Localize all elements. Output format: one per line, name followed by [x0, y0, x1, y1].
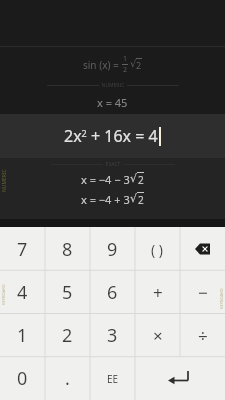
button[interactable]: 9	[90, 227, 135, 271]
button[interactable]: −	[180, 271, 225, 314]
button[interactable]: 8	[45, 227, 90, 271]
staticText: 9	[107, 237, 118, 262]
staticText: 2	[138, 173, 144, 187]
staticText: sin (x) =	[83, 58, 122, 72]
staticText: +	[153, 281, 163, 304]
button[interactable]: 6	[90, 271, 135, 314]
button[interactable]: 3	[90, 314, 135, 357]
staticText: ( )	[151, 240, 164, 259]
staticText: .	[65, 366, 70, 391]
staticText: x = −4 + 3	[81, 192, 130, 207]
staticText: 1	[123, 54, 128, 64]
button[interactable]: ÷	[180, 314, 225, 357]
staticText: 3	[107, 323, 118, 348]
staticText: 2x2 + 16x = 4	[64, 125, 158, 147]
staticText: √	[130, 192, 138, 205]
staticText: ×	[153, 324, 163, 347]
staticText: x = 45	[97, 95, 128, 110]
button[interactable]: ( )	[135, 227, 180, 271]
staticText: 0	[17, 366, 28, 391]
staticText: √	[130, 58, 137, 70]
staticText: 2	[138, 193, 144, 207]
button[interactable]: 4	[0, 271, 45, 314]
button[interactable]: 2	[45, 314, 90, 357]
staticText: 4	[17, 280, 28, 305]
staticText: 2	[62, 323, 73, 348]
button[interactable]	[180, 227, 225, 271]
button[interactable]	[135, 357, 225, 400]
staticText: KEYBOARD	[219, 288, 224, 309]
button[interactable]: EE	[90, 357, 135, 400]
staticText: 2	[123, 65, 128, 75]
staticText: −	[198, 281, 208, 304]
staticText: 7	[17, 237, 28, 262]
staticText: EXACT	[103, 161, 123, 168]
staticText: ÷	[198, 324, 208, 347]
button[interactable]: 5	[45, 271, 90, 314]
staticText: 6	[107, 280, 118, 305]
staticText: 2	[136, 59, 142, 71]
staticText: 1	[17, 323, 28, 348]
staticText: √	[130, 172, 138, 185]
staticText: x = −4 − 3	[81, 172, 130, 187]
staticText: NUMERIC	[99, 82, 127, 89]
staticText: 5	[62, 280, 73, 305]
button[interactable]: .	[45, 357, 90, 400]
button[interactable]: 7	[0, 227, 45, 271]
staticText: EE	[107, 372, 119, 386]
button[interactable]: 0	[0, 357, 45, 400]
button[interactable]: 1	[0, 314, 45, 357]
button[interactable]: ×	[135, 314, 180, 357]
staticText: 8	[62, 237, 73, 262]
button[interactable]: 2x2 + 16x = 4	[0, 114, 225, 158]
button[interactable]: +	[135, 271, 180, 314]
staticText: NUMERIC	[1, 169, 8, 192]
staticText: KEYBOARD	[1, 284, 6, 305]
